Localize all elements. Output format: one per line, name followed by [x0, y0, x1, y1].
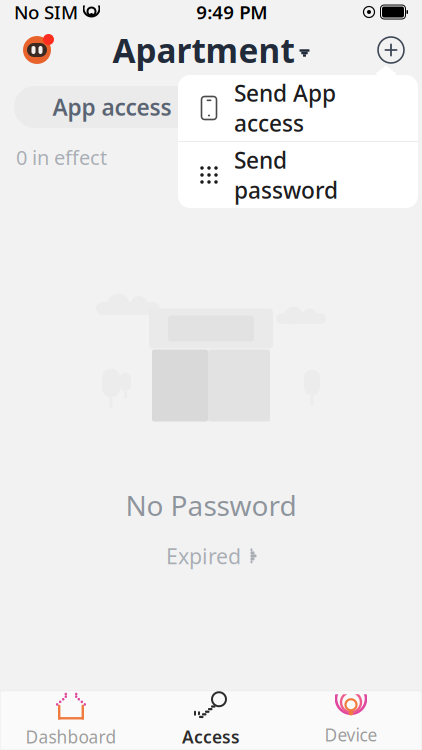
button[interactable]: Dashboard [1, 691, 141, 749]
button[interactable]: App access [14, 86, 210, 128]
staticText: App access [52, 92, 171, 122]
staticText: 0 in effect [16, 144, 107, 171]
button[interactable]: Profile [12, 30, 62, 70]
staticText: Device [324, 723, 377, 746]
button[interactable]: Add [372, 31, 410, 69]
button[interactable]: Expired [156, 536, 266, 576]
staticText: Send App access [234, 78, 336, 138]
staticText: 9:49 PM [196, 0, 267, 24]
staticText: No Password [125, 486, 296, 524]
staticText: Dashboard [25, 725, 116, 748]
staticText: Send password [234, 145, 338, 205]
staticText: Access [182, 725, 240, 748]
button[interactable]: Send password [178, 142, 418, 208]
staticText: Expired [166, 542, 241, 570]
button[interactable]: Send App access [178, 75, 418, 141]
staticText: Apartment [112, 28, 294, 72]
staticText: No SIM [14, 0, 78, 24]
button[interactable]: Access [141, 691, 281, 749]
button[interactable]: Device [281, 691, 421, 749]
button[interactable]: Apartment [106, 24, 315, 76]
